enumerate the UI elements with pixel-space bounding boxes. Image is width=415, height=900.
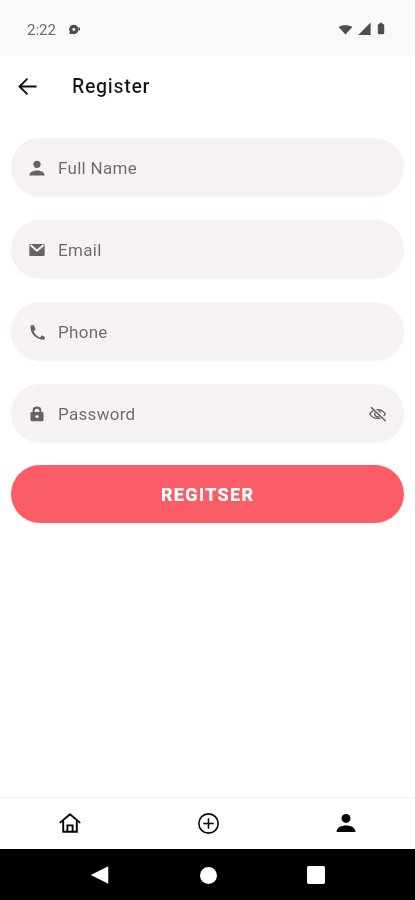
- button[interactable]: Show password: [364, 401, 390, 427]
- button[interactable]: Password: [11, 384, 404, 443]
- staticText: Phone: [58, 322, 108, 342]
- button[interactable]: Recents: [296, 855, 336, 895]
- button[interactable]: REGITSER: [11, 465, 404, 523]
- button[interactable]: Home: [188, 855, 228, 895]
- button[interactable]: Phone: [11, 302, 404, 361]
- staticText: Full Name: [58, 158, 138, 178]
- button[interactable]: Profile: [277, 797, 415, 849]
- button[interactable]: Back: [79, 855, 119, 895]
- staticText: Email: [58, 240, 102, 260]
- button[interactable]: Back: [10, 68, 46, 104]
- staticText: REGITSER: [161, 484, 255, 505]
- button[interactable]: Home: [0, 797, 139, 849]
- staticText: Password: [58, 404, 136, 424]
- staticText: 2:22: [27, 21, 56, 39]
- button[interactable]: Full Name: [11, 138, 404, 197]
- button[interactable]: Add: [139, 797, 277, 849]
- button[interactable]: Email: [11, 220, 404, 279]
- staticText: Register: [72, 75, 151, 98]
